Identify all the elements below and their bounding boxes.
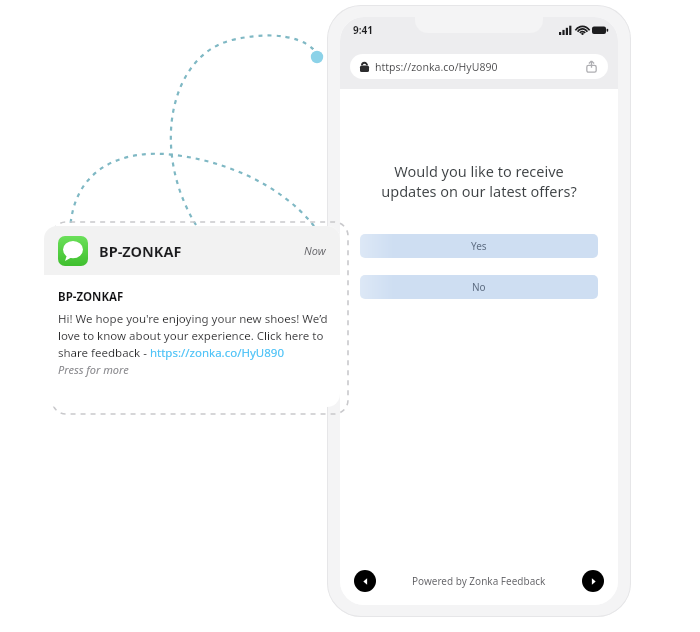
staticText: Yes [471, 239, 487, 253]
staticText: Press for more [58, 362, 129, 377]
staticText: BP-ZONKAF [58, 289, 124, 305]
button[interactable]: BP-ZONKAF [44, 226, 340, 407]
staticText: Now [304, 243, 326, 258]
button[interactable]: Back [354, 570, 376, 592]
staticText: Hi! We hope you're enjoying your new sho… [58, 311, 328, 360]
button[interactable]: No [360, 275, 598, 299]
button[interactable]: Next [582, 570, 604, 592]
staticText: Would you like to receive updates on our… [381, 161, 577, 202]
staticText: No [472, 280, 486, 294]
button[interactable]: Yes [360, 234, 598, 258]
button[interactable]: https://zonka.co/HyU890 [350, 54, 608, 79]
staticText: Powered by Zonka Feedback [412, 574, 546, 588]
staticText: 9:41 [353, 23, 373, 37]
button[interactable]: Share [585, 60, 598, 73]
staticText: https://zonka.co/HyU890 [375, 60, 498, 74]
staticText: BP-ZONKAF [99, 241, 182, 261]
